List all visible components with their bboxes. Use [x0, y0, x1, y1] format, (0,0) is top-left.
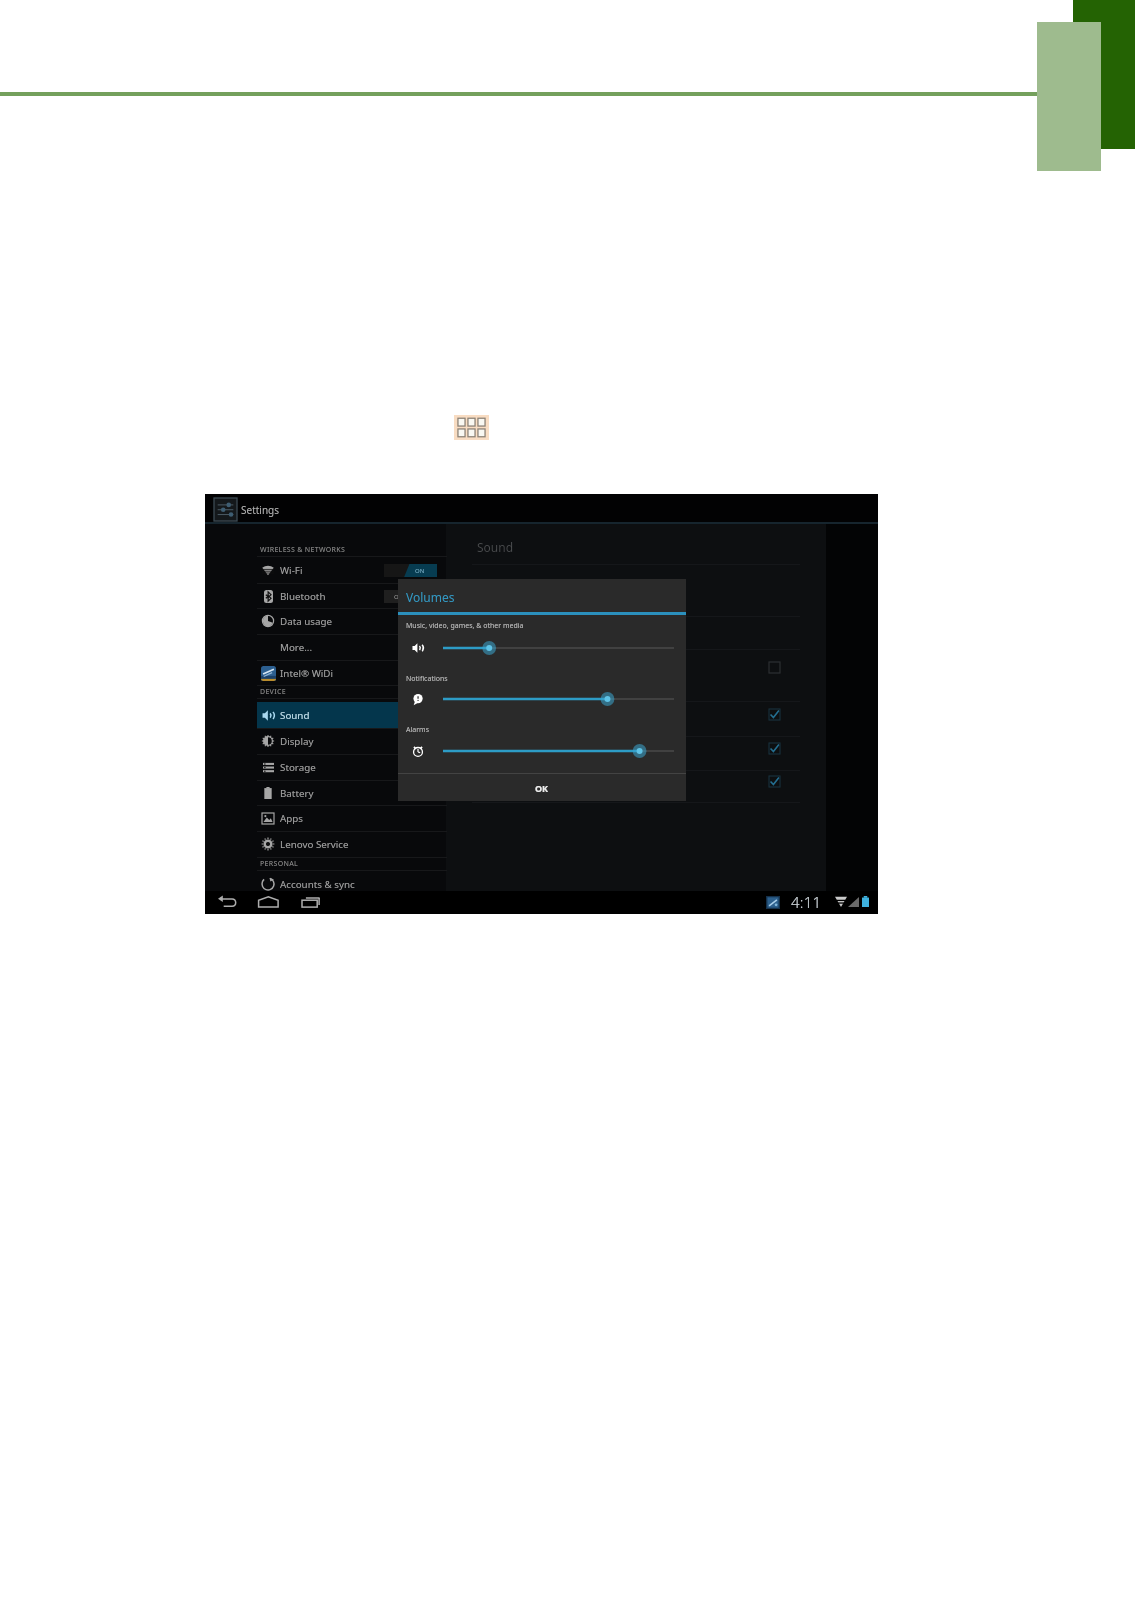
button[interactable]: Recent apps [299, 891, 321, 914]
staticText: OFF [394, 593, 405, 601]
staticText: Display [280, 735, 314, 748]
staticText: Notifications [406, 674, 448, 684]
button[interactable]: Back [217, 891, 239, 914]
button[interactable]: Data usage [257, 608, 447, 634]
button[interactable]: Lenovo Service [257, 831, 447, 857]
staticText: Wi-Fi [280, 564, 303, 577]
button[interactable]: Sound setting checkbox [769, 776, 780, 787]
staticText: Settings [241, 503, 280, 517]
button[interactable]: Sound setting checkbox [769, 743, 780, 754]
button[interactable]: Alarms [443, 744, 674, 758]
button[interactable]: Accounts & sync [257, 871, 447, 897]
staticText: Apps [280, 812, 304, 825]
button[interactable]: Display [257, 728, 447, 754]
button[interactable]: All apps [454, 415, 489, 440]
button[interactable]: Home [258, 891, 280, 914]
button[interactable]: Battery [257, 780, 447, 806]
staticText: Lenovo Service [280, 838, 349, 851]
staticText: More... [280, 641, 313, 654]
button[interactable]: Apps [257, 805, 447, 831]
button[interactable]: Bluetooth [257, 583, 447, 609]
button[interactable]: OK [398, 774, 686, 801]
button[interactable]: Music, video, games, & other media [443, 641, 674, 655]
button[interactable]: Vibrate when ringing [769, 662, 780, 673]
button[interactable]: ON [384, 564, 437, 577]
staticText: OK [535, 782, 549, 794]
staticText: Alarms [406, 725, 429, 735]
button[interactable]: More... [257, 634, 447, 660]
staticText: DEVICE [260, 687, 286, 697]
staticText: Data usage [280, 615, 333, 628]
staticText: PERSONAL [260, 859, 299, 869]
staticText: Bluetooth [280, 590, 326, 603]
staticText: Storage [280, 761, 316, 774]
button[interactable]: Storage [257, 754, 447, 780]
staticText: Sound [280, 709, 310, 722]
button[interactable]: Sound [257, 702, 447, 728]
button[interactable]: Settings app icon [214, 498, 237, 521]
button[interactable]: OFF [384, 590, 437, 603]
staticText: ON [415, 567, 425, 575]
staticText: Battery [280, 787, 314, 800]
staticText: Accounts & sync [280, 878, 355, 891]
button[interactable]: Sound setting checkbox [769, 709, 780, 720]
staticText: Music, video, games, & other media [406, 621, 524, 631]
staticText: 4:11 [791, 892, 822, 912]
button[interactable]: Wi-Fi [257, 557, 447, 583]
staticText: WIRELESS & NETWORKS [260, 545, 346, 555]
staticText: Volumes [406, 589, 455, 605]
staticText: Intel® WiDi [280, 667, 333, 680]
button[interactable]: Notifications [443, 692, 674, 706]
button[interactable]: Intel® WiDi [257, 660, 447, 686]
staticText: Sound [477, 539, 514, 555]
